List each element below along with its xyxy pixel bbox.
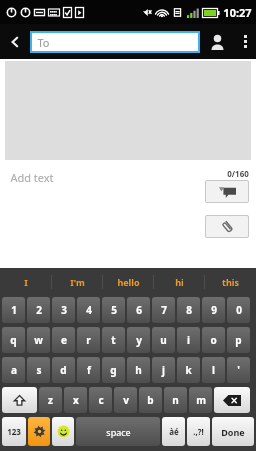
button[interactable]	[214, 387, 250, 413]
button[interactable]: 8	[177, 297, 200, 323]
staticText: d	[60, 363, 67, 377]
button[interactable]: Done	[212, 417, 254, 446]
button[interactable]: Settings	[28, 417, 50, 446]
button[interactable]: More options	[234, 24, 256, 59]
button[interactable]: t	[102, 327, 125, 353]
staticText: b	[147, 393, 154, 407]
staticText: y	[136, 333, 142, 347]
button[interactable]: o	[202, 327, 225, 353]
staticText: r	[86, 333, 91, 347]
button[interactable]	[52, 417, 74, 446]
staticText: g	[110, 363, 117, 377]
staticText: v	[123, 393, 129, 407]
staticText: Done	[221, 426, 245, 438]
button[interactable]: z	[39, 387, 62, 413]
staticText: a	[11, 363, 17, 377]
button[interactable]: àé	[162, 417, 185, 446]
button[interactable]: 6	[127, 297, 150, 323]
button[interactable]: Attach	[205, 215, 249, 238]
button[interactable]: p	[227, 327, 250, 353]
button[interactable]: 123	[2, 417, 26, 446]
button[interactable]: s	[27, 357, 50, 383]
button[interactable]: k	[177, 357, 200, 383]
button[interactable]: b	[139, 387, 162, 413]
button[interactable]: x	[64, 387, 87, 413]
staticText: i	[187, 333, 190, 347]
button[interactable]: Contacts	[200, 24, 234, 59]
button[interactable]: j	[152, 357, 175, 383]
staticText: s	[36, 363, 42, 377]
button[interactable]: '	[227, 357, 250, 383]
button[interactable]: I'm	[52, 268, 103, 295]
button[interactable]: c	[89, 387, 112, 413]
staticText: m	[196, 393, 206, 407]
button[interactable]: n	[164, 387, 187, 413]
button[interactable]: a	[2, 357, 25, 383]
button[interactable]: 3	[52, 297, 75, 323]
staticText: 4	[86, 303, 92, 317]
button[interactable]: To	[30, 31, 200, 53]
staticText: f	[87, 363, 91, 377]
button[interactable]: 1	[2, 297, 25, 323]
staticText: hello	[117, 276, 140, 288]
staticText: To	[37, 35, 50, 50]
button[interactable]: m	[189, 387, 212, 413]
button[interactable]: d	[52, 357, 75, 383]
staticText: 0/160	[227, 168, 249, 179]
button[interactable]: 4	[77, 297, 100, 323]
staticText: e	[61, 333, 67, 347]
staticText: 1	[11, 303, 17, 317]
button[interactable]: w	[27, 327, 50, 353]
staticText: 2	[36, 303, 42, 317]
button[interactable]	[2, 387, 37, 413]
button[interactable]: 7	[152, 297, 175, 323]
staticText: h	[135, 363, 142, 377]
staticText: z	[48, 393, 53, 407]
staticText: p	[235, 333, 242, 347]
button[interactable]: r	[77, 327, 100, 353]
staticText: 6	[136, 303, 142, 317]
staticText: hi	[175, 276, 184, 288]
button[interactable]: 0	[227, 297, 250, 323]
button[interactable]: I	[0, 268, 52, 295]
staticText: l	[212, 363, 215, 377]
button[interactable]: f	[77, 357, 100, 383]
button[interactable]: Back	[0, 24, 30, 59]
button[interactable]: hello	[103, 268, 154, 295]
button[interactable]: space	[76, 417, 160, 446]
staticText: o	[210, 333, 217, 347]
button[interactable]: Send message	[205, 180, 249, 203]
button[interactable]: h	[127, 357, 150, 383]
staticText: 0	[236, 303, 242, 317]
staticText: I	[24, 276, 28, 288]
button[interactable]: u	[152, 327, 175, 353]
staticText: k	[185, 363, 192, 377]
staticText: I'm	[70, 276, 85, 288]
button[interactable]: 2	[27, 297, 50, 323]
staticText: 7	[161, 303, 167, 317]
staticText: àé	[169, 426, 179, 437]
button[interactable]: .,?!	[187, 417, 210, 446]
staticText: q	[10, 333, 17, 347]
button[interactable]: l	[202, 357, 225, 383]
staticText: space	[106, 426, 131, 438]
button[interactable]: hi	[154, 268, 205, 295]
button[interactable]: 5	[102, 297, 125, 323]
staticText: 123	[7, 426, 21, 437]
staticText: 9	[211, 303, 217, 317]
staticText: t	[111, 333, 116, 347]
button[interactable]: y	[127, 327, 150, 353]
staticText: w	[34, 333, 43, 347]
button[interactable]: this	[205, 268, 256, 295]
button[interactable]: e	[52, 327, 75, 353]
button[interactable]: q	[2, 327, 25, 353]
button[interactable]: 9	[202, 297, 225, 323]
button[interactable]: v	[114, 387, 137, 413]
button[interactable]: g	[102, 357, 125, 383]
staticText: 10:27	[223, 5, 252, 20]
button[interactable]: i	[177, 327, 200, 353]
staticText: Add text	[10, 170, 54, 185]
staticText: .,?!	[193, 426, 204, 437]
staticText: n	[172, 393, 179, 407]
staticText: c	[98, 393, 104, 407]
